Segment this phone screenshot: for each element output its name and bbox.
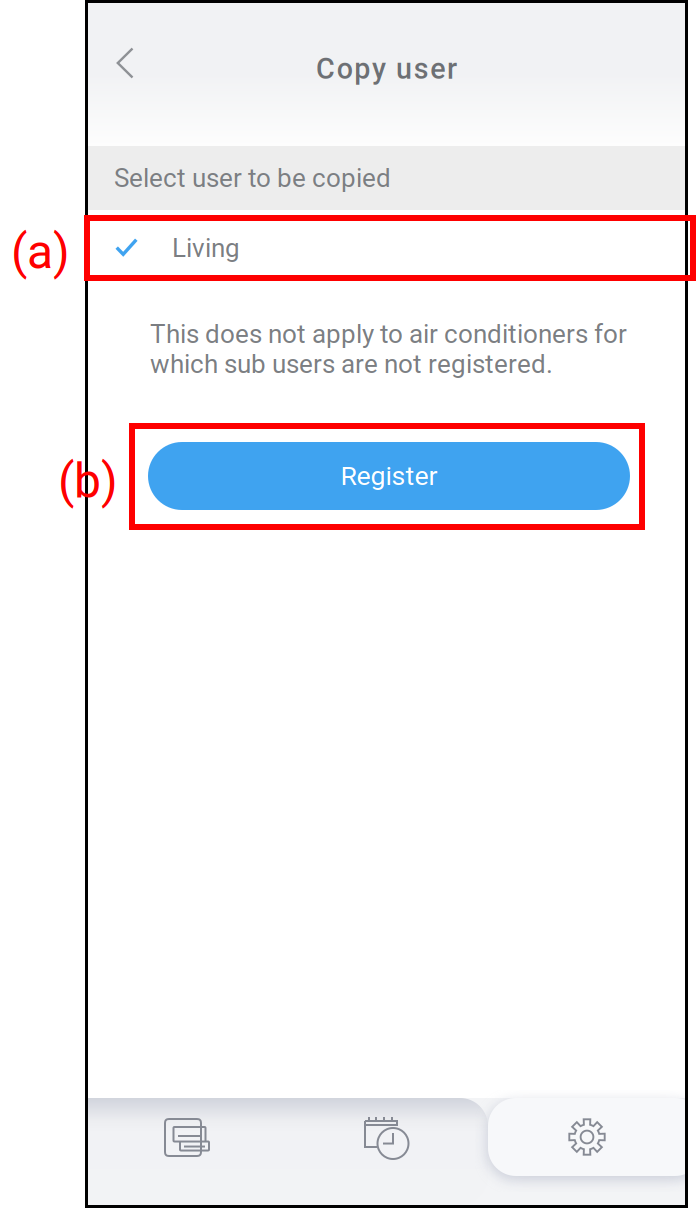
staticText: Register	[340, 460, 437, 492]
button[interactable]: Register	[148, 442, 630, 510]
staticText: This does not apply to air conditioners …	[150, 319, 627, 349]
staticText: (b)	[58, 453, 118, 509]
staticText: which sub users are not registered.	[150, 349, 553, 379]
button[interactable]: Back	[88, 21, 162, 105]
button[interactable]: Living	[88, 213, 685, 281]
button[interactable]: Schedule	[298, 1101, 488, 1201]
button[interactable]: Settings	[497, 1101, 687, 1201]
staticText: (a)	[11, 224, 70, 280]
staticText: Select user to be copied	[114, 163, 391, 193]
button[interactable]: Devices	[98, 1101, 288, 1201]
staticText: Copy user	[316, 52, 457, 86]
staticText: Living	[172, 233, 240, 263]
